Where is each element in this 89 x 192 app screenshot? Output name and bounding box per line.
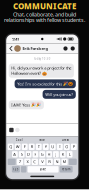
staticText: D [27,152,30,157]
button[interactable]: L [67,151,72,157]
staticText: return [62,167,71,171]
button[interactable]: R [29,144,35,150]
staticText: H [48,152,51,157]
staticText: Yes! I'm so excited for this 🎉🎃 [17,81,73,86]
staticText: I AM! Yess 🎉🎉 [11,102,41,107]
staticText: W [16,144,20,149]
staticText: T [38,144,40,149]
staticText: Cool [16,138,23,142]
button[interactable]: U [50,144,56,150]
button[interactable]: B [46,159,53,165]
staticText: O [65,144,68,149]
button[interactable]: 123 [12,166,20,172]
button[interactable] [8,159,16,165]
button[interactable]: K [60,151,66,157]
staticText: COMMUNICATE [13,1,76,11]
button[interactable]: Back [7,45,14,51]
button[interactable]: X [24,159,30,165]
staticText: F [34,152,36,157]
button[interactable]: M [61,159,68,165]
button[interactable] [69,159,77,165]
staticText: K [62,152,64,157]
staticText: R [31,144,33,149]
button[interactable]: E [22,144,28,150]
staticText: Hi, did you rework a project for the Hal… [11,65,71,76]
staticText: Z [19,159,21,164]
button[interactable]: Video call [63,46,68,51]
staticText: N [56,159,59,164]
button[interactable]: G [39,151,45,157]
staticText: S [21,152,23,157]
button[interactable]: Z [17,159,23,165]
button[interactable]: T [36,144,42,150]
button[interactable]: H [46,151,52,157]
staticText: B [48,159,51,164]
button[interactable]: More [71,46,75,51]
staticText: X [26,159,28,164]
button[interactable]: O [64,144,70,150]
staticText: 9:41 [12,36,19,42]
button[interactable]: W [15,144,21,150]
staticText: Y [45,144,47,149]
staticText: Chat, collaborate, and build [13,11,76,18]
button[interactable]: N [54,159,60,165]
button[interactable]: A [12,151,18,157]
button[interactable]: space [28,166,59,172]
staticText: P [73,144,75,149]
button[interactable]: C [32,159,38,165]
staticText: Will you join us? [45,92,73,97]
button[interactable]: Y [43,144,49,150]
staticText: E [24,144,26,149]
staticText: A [13,152,16,157]
staticText: Q [9,144,12,149]
button[interactable]: V [39,159,45,165]
button[interactable]: Add attachment [9,128,14,132]
staticText: U [51,144,54,149]
button[interactable]: D [26,151,31,157]
staticText: Nice [39,138,45,142]
staticText: V [41,159,43,164]
staticText: L [69,152,71,157]
staticText: I [59,144,60,149]
button[interactable]: P [71,144,77,150]
staticText: M [62,159,66,164]
staticText: 123 [13,167,19,171]
staticText: C [33,159,36,164]
button[interactable]: J [53,151,59,157]
button[interactable]: S [19,151,24,157]
staticText: G [41,152,44,157]
staticText: relationships with fellow students. [4,16,85,24]
button[interactable]: I [57,144,63,150]
staticText: space [40,167,47,171]
button[interactable]: Q [8,144,14,150]
button[interactable]: return [60,166,73,172]
staticText: J [55,152,56,157]
staticText: Today 10:30 [34,57,51,60]
staticText: Great [62,138,69,142]
button[interactable]: F [32,151,38,157]
staticText: Erik Forsberg [22,46,48,51]
